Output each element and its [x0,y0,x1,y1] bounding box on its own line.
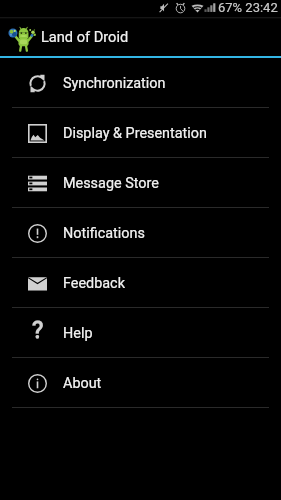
staticText: Display & Presentation [63,125,207,142]
button[interactable]: ? [0,308,281,357]
button[interactable]: About [0,358,281,407]
staticText: Help [63,325,93,342]
staticText: Synchronization [63,75,166,92]
staticText: Land of Droid [41,28,129,45]
staticText: 67% 23:42 [218,0,278,15]
staticText: About [63,375,102,392]
staticText: Notifications [63,225,145,242]
staticText: ? [32,316,44,342]
button[interactable]: Message Store [0,158,281,207]
staticText: Message Store [63,175,159,192]
button[interactable]: Synchronization [0,58,281,107]
button[interactable]: Feedback [0,258,281,307]
staticText: Feedback [63,275,125,292]
button[interactable]: Notifications [0,208,281,257]
button[interactable]: Display & Presentation [0,108,281,157]
